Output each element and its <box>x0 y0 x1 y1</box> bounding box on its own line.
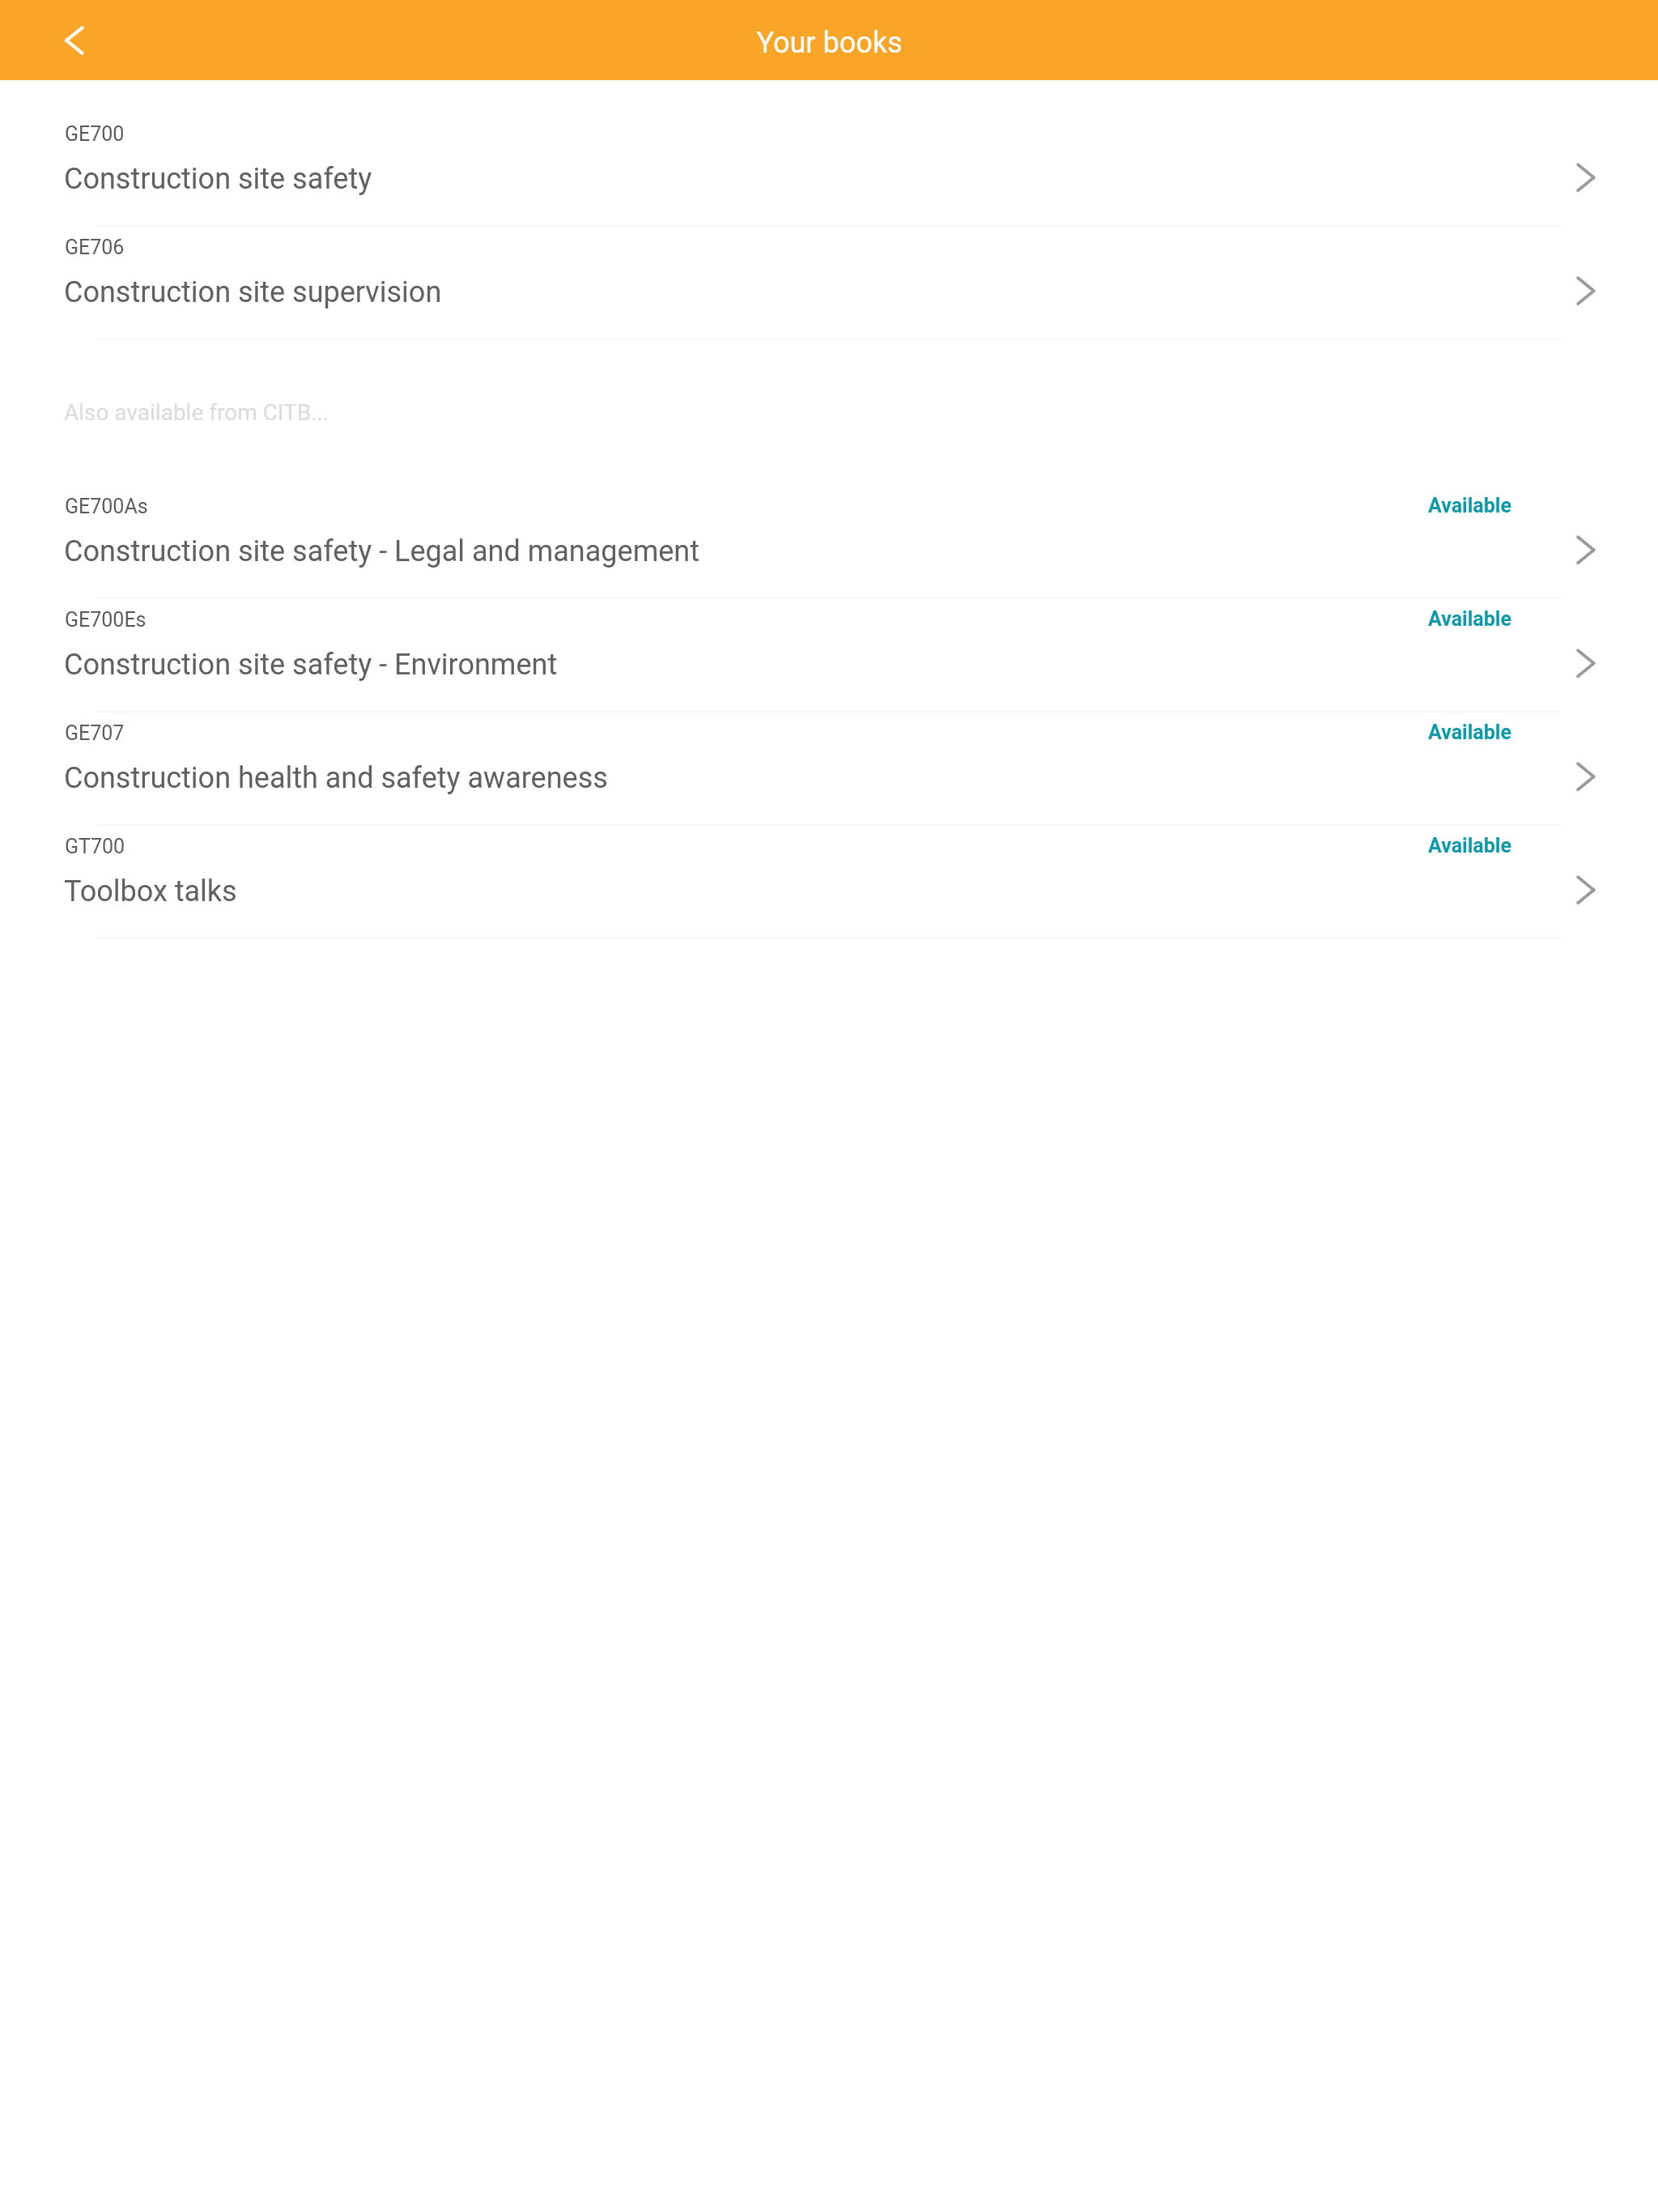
staticText: GT700 <box>65 835 125 858</box>
staticText: GE700Es <box>65 608 147 632</box>
staticText: GE707 <box>65 721 125 745</box>
staticText: Your books <box>756 26 903 60</box>
staticText: Available <box>1428 607 1511 631</box>
staticText: GE700 <box>65 122 125 146</box>
staticText: Construction health and safety awareness <box>64 761 608 795</box>
staticText: Construction site safety - Environment <box>64 648 558 682</box>
staticText: Available <box>1428 834 1511 857</box>
staticText: Construction site safety <box>64 162 372 196</box>
button[interactable]: GE707 <box>0 713 1658 826</box>
button[interactable]: GE700 <box>0 113 1658 227</box>
button[interactable]: GT700 <box>0 826 1658 939</box>
staticText: Available <box>1428 494 1511 517</box>
staticText: Construction site safety - Legal and man… <box>64 534 699 568</box>
staticText: GE700As <box>65 495 148 518</box>
staticText: Available <box>1428 721 1511 744</box>
staticText: Also available from CITB... <box>64 399 329 426</box>
staticText: GE706 <box>65 236 125 259</box>
button[interactable]: Back <box>42 16 91 65</box>
staticText: Toolbox talks <box>64 874 237 908</box>
button[interactable]: GE706 <box>0 227 1658 340</box>
button[interactable]: GE700As <box>0 486 1658 599</box>
staticText: Construction site supervision <box>64 275 442 309</box>
button[interactable]: GE700Es <box>0 599 1658 713</box>
